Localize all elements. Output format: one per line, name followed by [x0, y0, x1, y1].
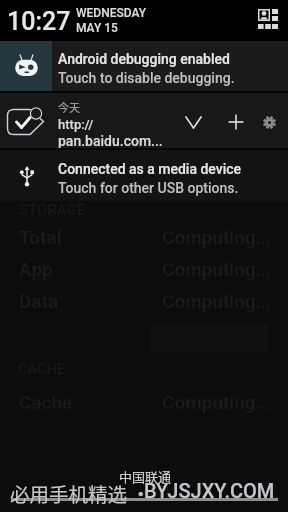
staticText: Touch to disable debugging. [58, 70, 235, 86]
staticText: Cache [19, 391, 73, 413]
staticText: Computing... [162, 226, 272, 248]
staticText: Touch for other USB options. [58, 180, 239, 196]
staticText: Computing... [162, 290, 272, 312]
staticText: Total [19, 226, 62, 248]
staticText: WEDNESDAY [76, 6, 147, 20]
staticText: Computing... [162, 391, 272, 413]
staticText: http:// [58, 117, 94, 132]
staticText: MAY 15 [76, 21, 118, 35]
staticText: Computing... [162, 258, 272, 280]
staticText: Android debugging enabled [58, 51, 230, 67]
button[interactable]: Add [220, 106, 252, 138]
staticText: Connected as a media device [58, 161, 242, 177]
button[interactable]: Settings [253, 106, 285, 138]
staticText: App [19, 258, 53, 280]
staticText: pan.baidu.com... [58, 133, 163, 149]
staticText: Data [19, 290, 59, 312]
staticText: 今天 [58, 99, 80, 115]
staticText: 10:27 [7, 7, 71, 36]
staticText: • [131, 479, 151, 507]
staticText: 必用手机精选 [10, 479, 128, 507]
staticText: 中国联通 [119, 467, 172, 486]
button[interactable]: Expand [177, 106, 209, 138]
button[interactable]: Android debugging enabled [0, 41, 288, 91]
staticText: BYJSJXY.COM [144, 479, 275, 502]
staticText: CACHE [18, 361, 65, 378]
button[interactable]: Quick settings [252, 3, 284, 35]
staticText: STORAGE [19, 201, 86, 219]
button[interactable]: Connected as a media device [0, 150, 288, 201]
button[interactable]: 今天 [0, 93, 288, 148]
